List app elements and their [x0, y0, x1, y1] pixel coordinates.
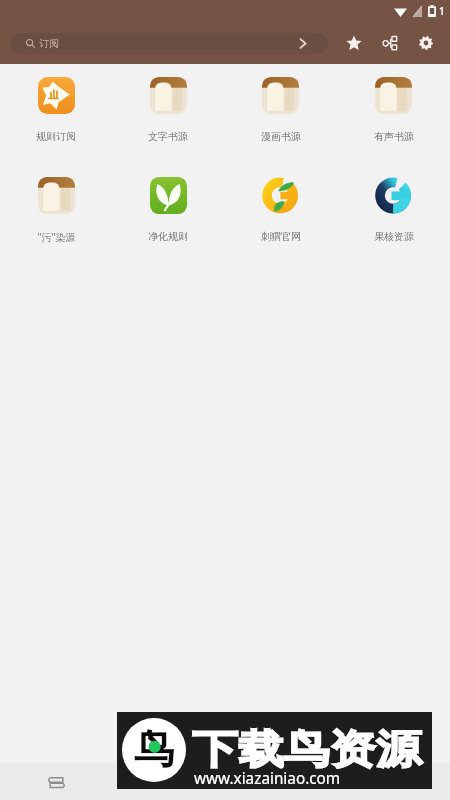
button[interactable]: 果核资源	[337, 172, 450, 243]
button[interactable]: Settings	[408, 22, 444, 64]
staticText: 漫画书源	[261, 130, 301, 143]
button[interactable]: Share	[372, 22, 408, 64]
staticText: 鸟	[134, 724, 174, 774]
staticText: 刺猬官网	[261, 230, 301, 243]
staticText: 净化规则	[148, 230, 188, 243]
button[interactable]: 文字书源	[112, 72, 224, 143]
button[interactable]: 有声书源	[337, 72, 450, 143]
staticText: 文字书源	[148, 130, 188, 143]
staticText: 有声书源	[374, 130, 414, 143]
staticText: 果核资源	[374, 230, 414, 243]
button[interactable]: 规则订阅	[0, 72, 112, 143]
button[interactable]: 订阅	[10, 33, 328, 54]
staticText: 下载鸟资源	[192, 724, 421, 775]
button[interactable]: Bookshelf	[0, 763, 112, 800]
button[interactable]: Favorite	[336, 22, 372, 64]
button[interactable]: "污"染源	[0, 172, 112, 244]
staticText: 规则订阅	[36, 130, 76, 143]
staticText: "污"染源	[37, 230, 76, 244]
staticText: 订阅	[39, 37, 59, 50]
button[interactable]: 刺猬官网	[224, 172, 337, 243]
button[interactable]: 漫画书源	[224, 72, 337, 143]
staticText: 1	[439, 4, 445, 18]
staticText: www.xiazainiao.com	[194, 766, 341, 789]
button[interactable]: 净化规则	[112, 172, 224, 243]
